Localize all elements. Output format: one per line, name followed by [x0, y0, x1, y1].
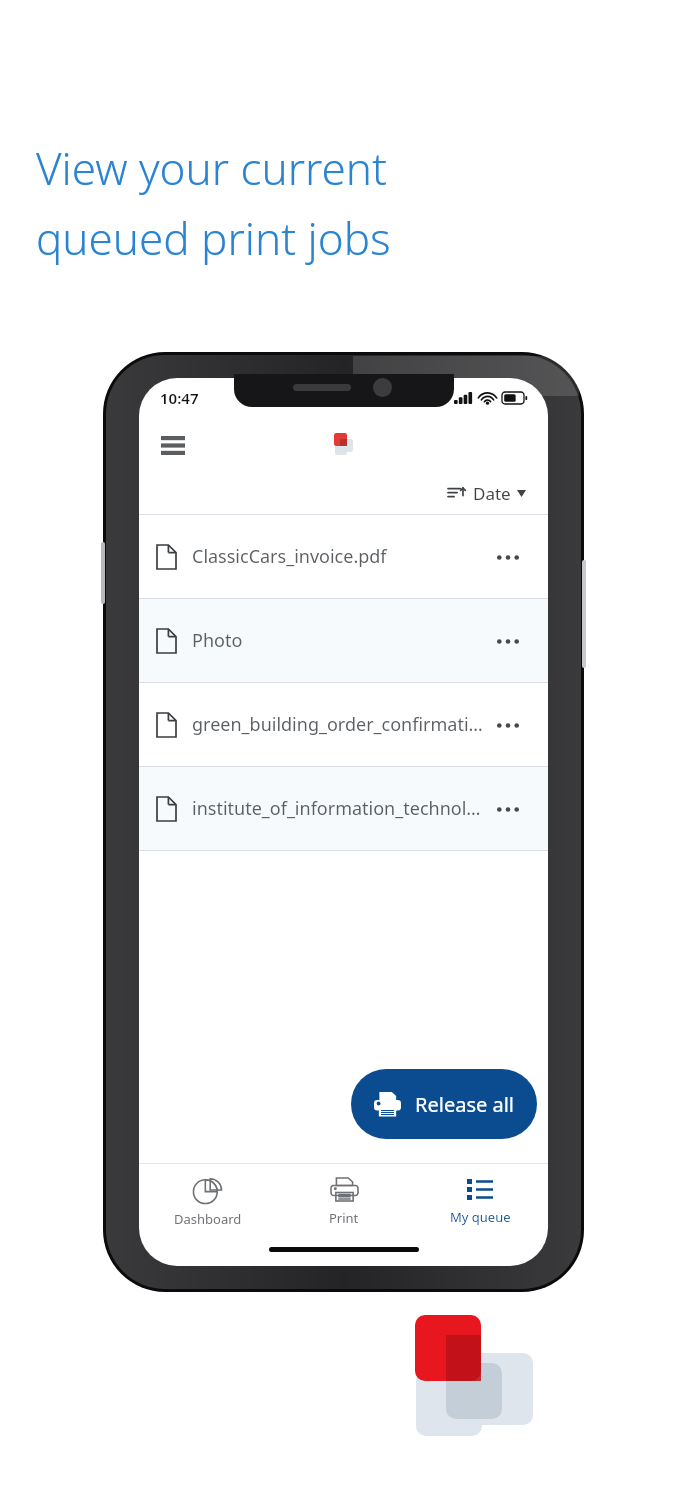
button[interactable]: Print — [276, 1171, 412, 1233]
button[interactable]: ClassicCars_invoice.pdf — [139, 515, 548, 598]
staticText: Release all — [415, 1091, 514, 1118]
staticText: View your current — [36, 138, 657, 198]
button[interactable]: green_building_order_confirmati… — [139, 683, 548, 766]
staticText: My queue — [450, 1208, 511, 1226]
button[interactable]: Date — [442, 478, 532, 509]
staticText: queued print jobs — [36, 208, 657, 268]
button[interactable]: My queue — [412, 1173, 548, 1232]
button[interactable]: More options — [486, 535, 530, 579]
button[interactable]: More options — [486, 619, 530, 663]
staticText: institute_of_information_technol… — [192, 796, 481, 821]
staticText: Photo — [192, 628, 243, 653]
button[interactable]: Dashboard — [139, 1170, 276, 1234]
staticText: green_building_order_confirmati… — [192, 712, 483, 737]
staticText: Dashboard — [174, 1210, 242, 1228]
button[interactable]: Menu — [149, 421, 197, 469]
staticText: 10:47 — [160, 388, 199, 408]
staticText: Date — [473, 482, 511, 505]
button[interactable]: More options — [486, 787, 530, 831]
button[interactable]: Photo — [139, 599, 548, 682]
staticText: Print — [329, 1209, 359, 1227]
button[interactable]: Release all — [351, 1069, 537, 1139]
button[interactable]: More options — [486, 703, 530, 747]
staticText: ClassicCars_invoice.pdf — [192, 544, 387, 569]
button[interactable]: institute_of_information_technol… — [139, 767, 548, 850]
